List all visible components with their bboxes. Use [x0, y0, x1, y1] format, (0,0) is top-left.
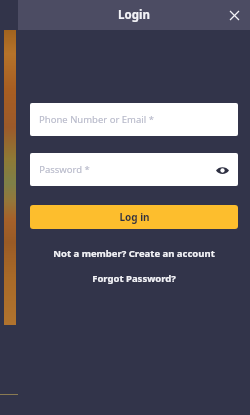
staticText: Not a member? Create an account [53, 247, 215, 260]
button[interactable]: Not a member? Create an account [30, 244, 238, 262]
button[interactable]: Log in [30, 205, 238, 229]
button[interactable]: Show password [212, 160, 232, 180]
button[interactable]: Password * [30, 153, 238, 186]
button[interactable]: Phone Number or Email * [30, 103, 238, 136]
staticText: Forgot Password? [92, 272, 176, 285]
staticText: Login [118, 7, 150, 23]
staticText: Log in [119, 210, 150, 224]
button[interactable]: Forgot Password? [30, 269, 238, 287]
staticText: Password * [39, 163, 90, 176]
staticText: Phone Number or Email * [39, 113, 154, 126]
button[interactable]: Close [223, 4, 245, 26]
